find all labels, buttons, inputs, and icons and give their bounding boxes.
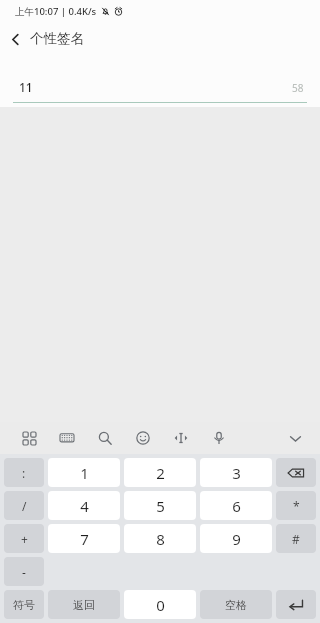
staticText: 0 [156,595,165,615]
button[interactable]: 2 [124,458,196,487]
staticText: 1 [80,463,89,483]
staticText: * [293,498,300,514]
button[interactable]: * [276,491,316,520]
staticText: + [21,531,28,547]
button[interactable]: 4 [48,491,120,520]
button[interactable]: 1 [48,458,120,487]
button[interactable]: 返回 [48,590,120,619]
button[interactable]: Back [0,24,30,54]
button[interactable]: / [4,491,44,520]
button[interactable]: 3 [200,458,272,487]
button[interactable]: + [4,524,44,553]
button[interactable]: 6 [200,491,272,520]
button[interactable]: Move cursor [162,422,200,454]
staticText: 5 [156,496,165,516]
staticText: 3 [232,463,241,483]
button[interactable]: Voice input [200,422,238,454]
button[interactable]: Backspace [276,458,316,487]
staticText: : [22,465,26,481]
staticText: 7 [80,529,89,549]
button[interactable]: 空格 [200,590,272,619]
button[interactable]: 8 [124,524,196,553]
staticText: 4 [80,496,89,516]
button[interactable]: Search [86,422,124,454]
button[interactable]: - [4,557,44,586]
staticText: / [22,498,27,514]
button[interactable]: # [276,524,316,553]
staticText: 上午10:07 | 0.4K/s [15,5,97,18]
staticText: - [22,564,26,580]
staticText: 符号 [13,598,35,612]
staticText: # [292,531,300,547]
button[interactable]: 5 [124,491,196,520]
button[interactable]: Keyboard layout [48,422,86,454]
button[interactable]: : [4,458,44,487]
button[interactable]: Apps [10,422,48,454]
staticText: 11 [19,79,33,95]
button[interactable]: 9 [200,524,272,553]
staticText: 9 [232,529,241,549]
staticText: 6 [232,496,241,516]
staticText: 个性签名 [30,30,84,47]
button[interactable]: Emoji [124,422,162,454]
staticText: 8 [156,529,165,549]
button[interactable]: 符号 [4,590,44,619]
button[interactable]: 7 [48,524,120,553]
staticText: 返回 [73,598,95,612]
button[interactable]: 0 [124,590,196,619]
staticText: 58 [292,81,304,95]
staticText: 空格 [225,598,247,612]
button[interactable]: Hide keyboard [278,422,312,454]
staticText: 2 [156,463,165,483]
button[interactable]: Enter [276,590,316,619]
